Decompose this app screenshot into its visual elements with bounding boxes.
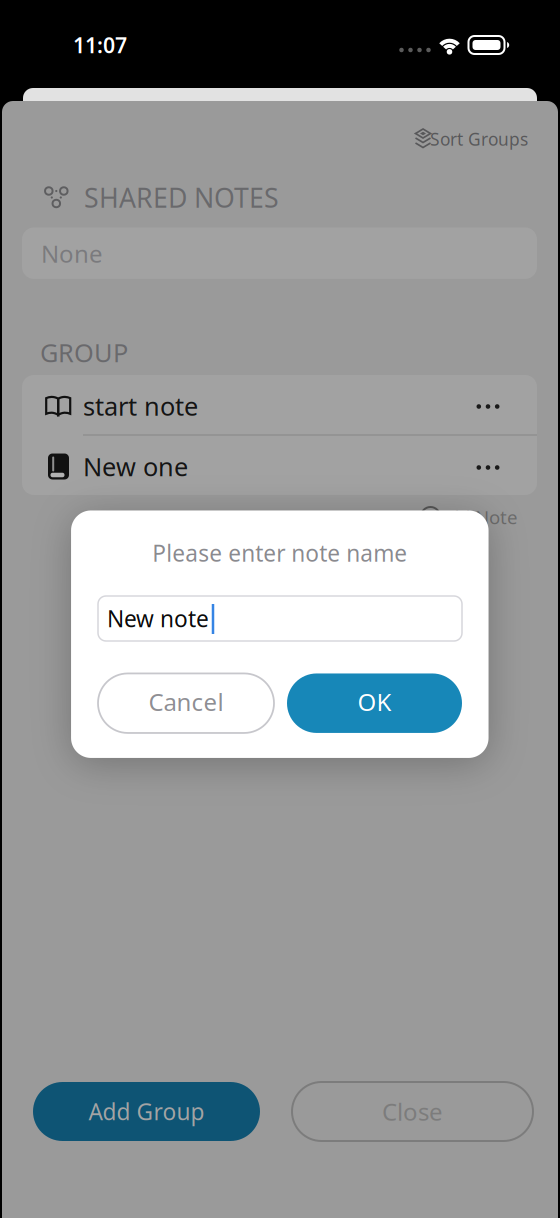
staticText: Please enter note name: [152, 538, 407, 568]
button[interactable]: start note: [45, 377, 515, 435]
button[interactable]: Add Group: [33, 1082, 260, 1141]
staticText: SHARED NOTES: [84, 180, 279, 215]
button[interactable]: Note name: [98, 596, 462, 641]
staticText: start note: [83, 389, 198, 423]
staticText: GROUP: [40, 336, 128, 369]
button[interactable]: Options for start note: [468, 386, 508, 426]
button[interactable]: New one: [45, 437, 515, 495]
staticText: Cancel: [148, 686, 223, 718]
staticText: New one: [83, 450, 188, 483]
button[interactable]: Close: [292, 1082, 533, 1141]
button[interactable]: Options for New one: [468, 447, 508, 487]
staticText: Close: [382, 1096, 443, 1127]
button[interactable]: Cancel: [98, 673, 274, 733]
staticText: None: [41, 238, 103, 269]
staticText: Add Group: [88, 1096, 204, 1126]
button[interactable]: Add Note: [408, 502, 518, 530]
staticText: New note: [107, 603, 209, 633]
button[interactable]: Sort Groups: [411, 124, 531, 153]
button[interactable]: OK: [287, 673, 462, 733]
staticText: 11:07: [73, 31, 127, 59]
staticText: Add Note: [436, 505, 518, 529]
staticText: OK: [357, 686, 391, 718]
staticText: Sort Groups: [430, 127, 528, 150]
